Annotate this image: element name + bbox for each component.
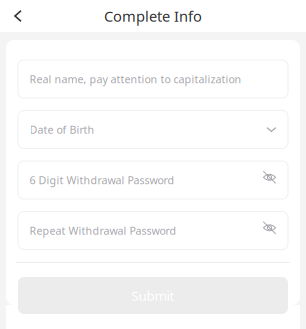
staticText: Real name, pay attention to capitalizati…: [29, 72, 241, 86]
button[interactable]: Show repeated withdrawal password: [262, 221, 276, 240]
staticText: Repeat Withdrawal Password: [29, 223, 176, 238]
staticText: Date of Birth: [29, 122, 94, 137]
staticText: Complete Info: [104, 6, 202, 26]
button[interactable]: Choose date of birth: [266, 127, 276, 132]
button[interactable]: Show withdrawal password: [262, 170, 276, 189]
staticText: 6 Digit Withdrawal Password: [29, 173, 174, 187]
button[interactable]: Back: [0, 0, 36, 32]
staticText: Submit: [131, 287, 174, 304]
